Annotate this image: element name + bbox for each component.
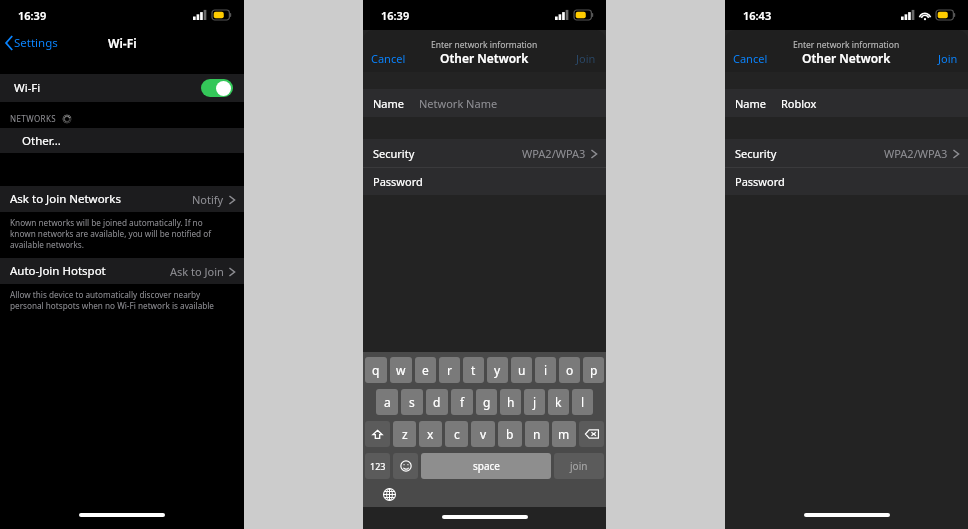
button[interactable]: Name xyxy=(725,89,968,117)
staticText: Other... xyxy=(22,133,61,149)
button[interactable]: z xyxy=(393,421,416,447)
staticText: 16:43 xyxy=(743,8,772,23)
staticText: Enter network information xyxy=(793,39,900,51)
button[interactable]: r xyxy=(439,357,460,383)
button[interactable]: space xyxy=(421,453,551,479)
staticText: k xyxy=(555,394,562,410)
button[interactable]: x xyxy=(419,421,442,447)
staticText: j xyxy=(533,394,537,410)
button[interactable]: t xyxy=(463,357,484,383)
button[interactable]: Wi-Fi xyxy=(0,74,244,102)
staticText: Password xyxy=(373,174,423,189)
button[interactable]: Auto-Join Hotspot xyxy=(0,258,244,284)
button[interactable]: p xyxy=(583,357,604,383)
button[interactable]: j xyxy=(524,389,545,415)
button[interactable]: y xyxy=(487,357,508,383)
staticText: Wi-Fi xyxy=(14,80,41,96)
button[interactable]: Emoji xyxy=(393,453,418,479)
staticText: Join xyxy=(938,51,958,66)
staticText: Security xyxy=(735,146,777,161)
staticText: s xyxy=(409,394,415,410)
button[interactable]: Name xyxy=(363,89,606,117)
button[interactable]: Other... xyxy=(0,128,244,153)
staticText: Roblox xyxy=(781,96,817,111)
button[interactable]: b xyxy=(498,421,522,447)
button[interactable]: o xyxy=(559,357,580,383)
staticText: WPA2/WPA3 xyxy=(884,146,948,161)
staticText: m xyxy=(558,426,570,442)
staticText: Enter network information xyxy=(431,39,538,51)
button[interactable]: q xyxy=(365,357,387,383)
staticText: 16:39 xyxy=(18,8,47,23)
button[interactable]: s xyxy=(401,389,423,415)
staticText: x xyxy=(427,426,434,442)
staticText: Other Network xyxy=(440,50,529,66)
staticText: Name xyxy=(735,96,767,111)
button[interactable]: g xyxy=(476,389,497,415)
button[interactable]: w xyxy=(390,357,412,383)
button[interactable]: d xyxy=(426,389,448,415)
staticText: space xyxy=(473,459,500,473)
button[interactable]: l xyxy=(572,389,593,415)
staticText: Security xyxy=(373,146,415,161)
staticText: join xyxy=(570,459,588,473)
button[interactable]: Backspace xyxy=(579,421,604,447)
button[interactable]: v xyxy=(471,421,495,447)
button[interactable]: Cancel xyxy=(371,51,406,66)
staticText: 123 xyxy=(370,460,386,472)
staticText: Other Network xyxy=(802,50,891,66)
button[interactable]: u xyxy=(511,357,532,383)
staticText: z xyxy=(402,426,408,442)
button[interactable]: a xyxy=(376,389,398,415)
staticText: Allow this device to automatically disco… xyxy=(10,289,226,311)
button[interactable]: Password xyxy=(363,168,606,195)
staticText: Auto-Join Hotspot xyxy=(10,263,106,279)
button[interactable]: i xyxy=(535,357,556,383)
staticText: f xyxy=(460,394,465,410)
staticText: Cancel xyxy=(371,51,406,66)
button[interactable]: f xyxy=(451,389,473,415)
staticText: t xyxy=(471,362,476,378)
button[interactable]: 123 xyxy=(365,453,390,479)
staticText: WPA2/WPA3 xyxy=(522,146,586,161)
staticText: Join xyxy=(576,51,596,66)
staticText: y xyxy=(494,362,501,378)
staticText: Cancel xyxy=(733,51,768,66)
staticText: Settings xyxy=(14,35,58,51)
button[interactable]: h xyxy=(500,389,521,415)
staticText: b xyxy=(506,426,514,442)
button[interactable]: m xyxy=(552,421,576,447)
staticText: Known networks will be joined automatica… xyxy=(10,217,226,250)
button[interactable]: Security xyxy=(725,139,968,167)
button[interactable]: e xyxy=(415,357,436,383)
staticText: v xyxy=(480,426,487,442)
staticText: g xyxy=(483,394,491,410)
button[interactable]: Shift xyxy=(365,421,390,447)
button[interactable]: Change keyboard xyxy=(381,486,397,502)
staticText: NETWORKS xyxy=(10,113,57,124)
staticText: q xyxy=(372,362,380,378)
button[interactable]: n xyxy=(525,421,549,447)
staticText: 16:39 xyxy=(381,8,410,23)
button[interactable]: c xyxy=(445,421,468,447)
staticText: c xyxy=(454,426,460,442)
button[interactable]: join xyxy=(554,453,604,479)
button[interactable]: Join xyxy=(938,51,958,66)
staticText: r xyxy=(447,362,452,378)
button[interactable]: Join xyxy=(576,51,596,66)
button[interactable]: Password xyxy=(725,168,968,195)
staticText: a xyxy=(384,394,391,410)
button[interactable]: Ask to Join Networks xyxy=(0,186,244,212)
button[interactable]: Settings xyxy=(5,35,58,51)
staticText: l xyxy=(581,394,585,410)
staticText: w xyxy=(396,362,406,378)
staticText: h xyxy=(507,394,515,410)
staticText: e xyxy=(422,362,429,378)
button[interactable]: Security xyxy=(363,139,606,167)
staticText: u xyxy=(518,362,526,378)
staticText: o xyxy=(566,362,574,378)
staticText: Password xyxy=(735,174,785,189)
staticText: Notify xyxy=(192,192,224,207)
button[interactable]: k xyxy=(548,389,569,415)
button[interactable]: Cancel xyxy=(733,51,768,66)
